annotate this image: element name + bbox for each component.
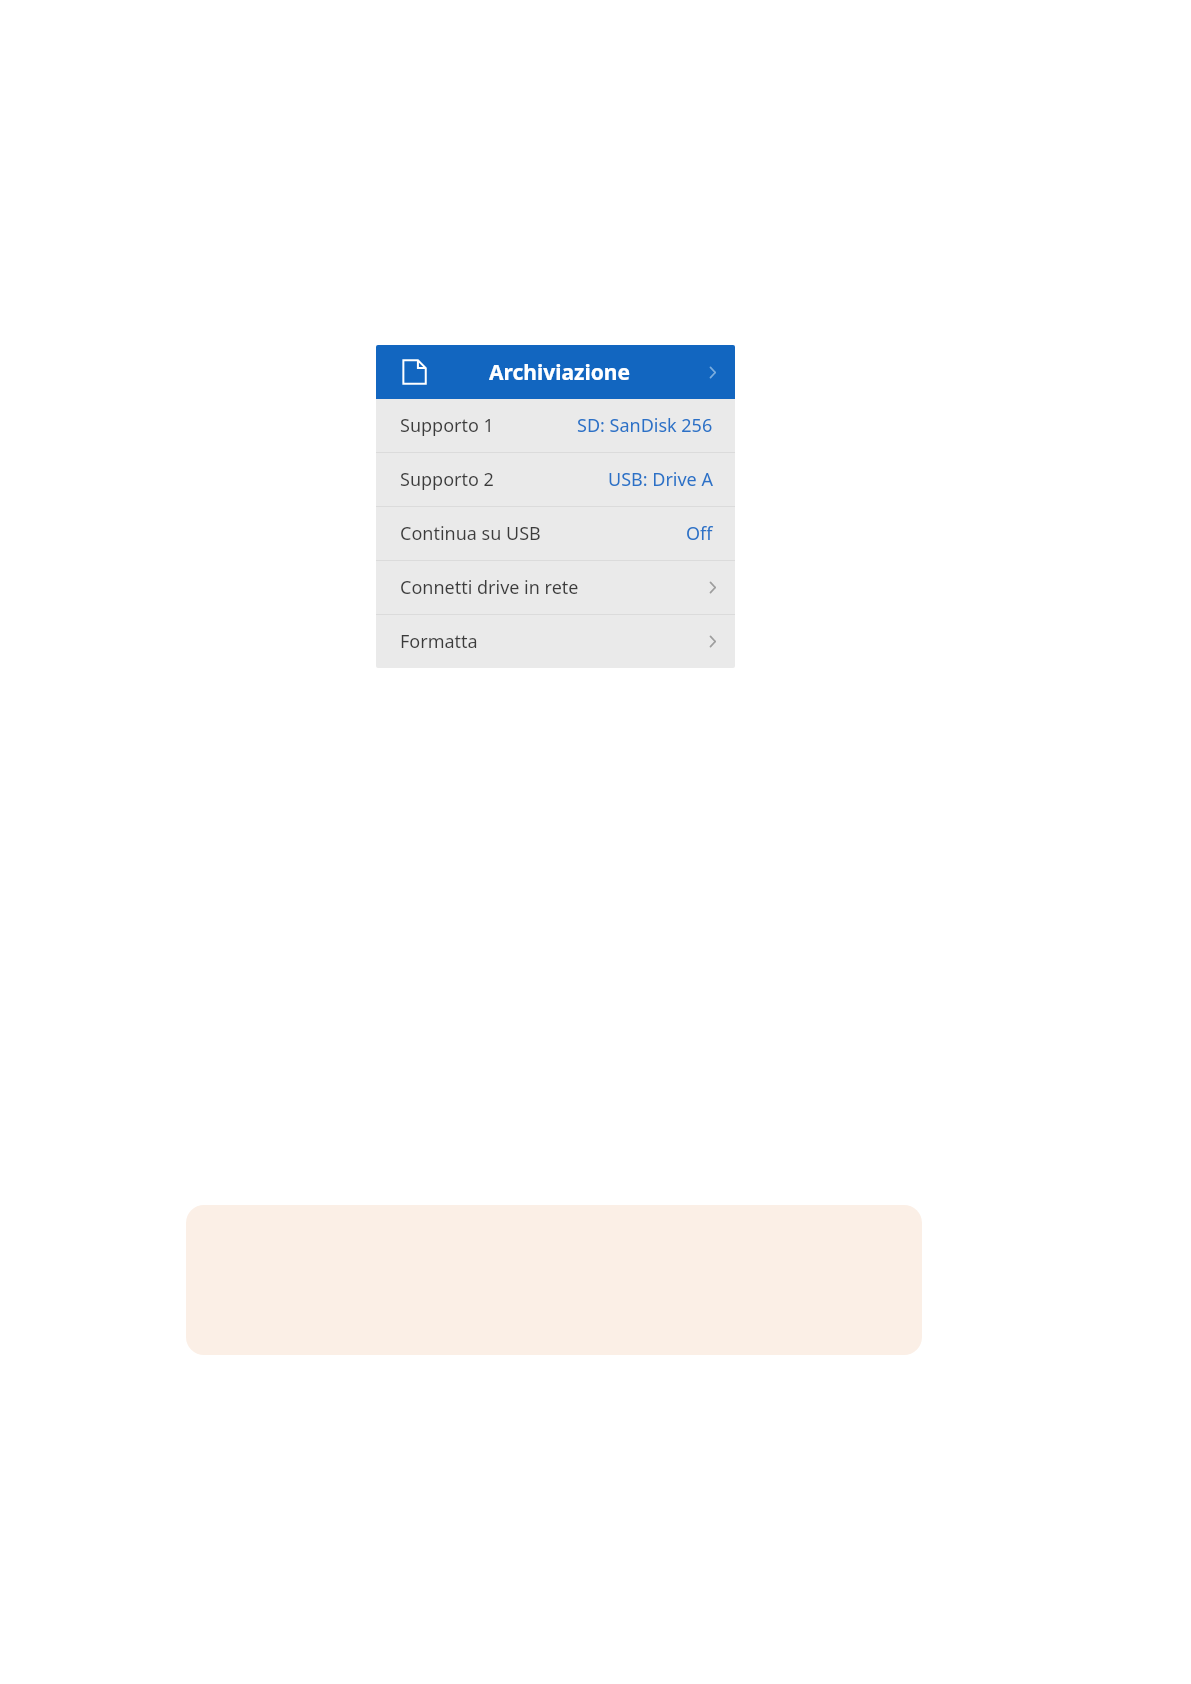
staticText: Archiviazione xyxy=(489,358,631,387)
staticText: Continua su USB xyxy=(400,521,541,546)
button[interactable]: Supporto 2 xyxy=(376,453,735,506)
other: Archiviazione xyxy=(398,356,430,388)
staticText: Supporto 2 xyxy=(400,467,494,492)
button[interactable]: Continua su USB xyxy=(376,507,735,560)
staticText: SD: SanDisk 256 xyxy=(577,413,713,438)
staticText: Off xyxy=(686,521,713,546)
staticText: Formatta xyxy=(400,629,478,654)
button[interactable]: Formatta xyxy=(376,615,735,668)
button[interactable]: Supporto 1 xyxy=(376,399,735,452)
button[interactable]: Connetti drive in rete xyxy=(376,561,735,614)
staticText: Connetti drive in rete xyxy=(400,575,579,600)
staticText: Supporto 1 xyxy=(400,413,494,438)
button[interactable]: Archiviazione xyxy=(376,345,735,399)
staticText: USB: Drive A xyxy=(608,467,713,492)
